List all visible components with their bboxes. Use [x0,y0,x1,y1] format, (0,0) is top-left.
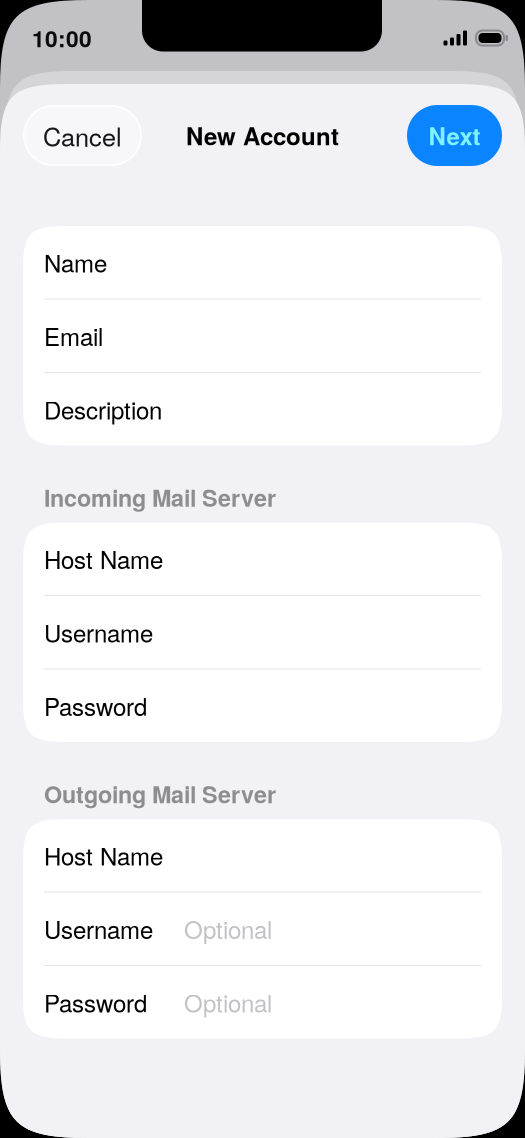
button[interactable]: Email [23,299,502,372]
staticText: Next [428,118,480,153]
staticText: Username [44,615,153,649]
button[interactable]: Host Name [23,522,502,595]
button[interactable]: Cancel [23,105,142,166]
button[interactable]: Password [23,966,502,1038]
button[interactable]: Next [407,105,502,166]
staticText: New Account [186,118,339,153]
button[interactable]: Name [23,226,502,298]
staticText: Incoming Mail Server [44,480,276,514]
staticText: Email [44,319,103,353]
staticText: Optional [184,912,272,946]
staticText: Username [44,912,153,946]
button[interactable]: Username [23,892,502,965]
button[interactable]: Description [23,373,502,445]
staticText: Cancel [43,117,122,154]
staticText: Outgoing Mail Server [44,777,276,810]
staticText: Password [44,689,147,723]
button[interactable]: Password [23,669,502,742]
staticText: Host Name [44,542,163,576]
staticText: Description [44,392,162,426]
staticText: Name [44,245,107,279]
button[interactable]: Username [23,596,502,668]
staticText: 10:00 [32,22,92,54]
staticText: Host Name [44,838,163,872]
button[interactable]: Host Name [23,819,502,891]
staticText: Password [44,985,147,1019]
staticText: Optional [184,985,272,1019]
